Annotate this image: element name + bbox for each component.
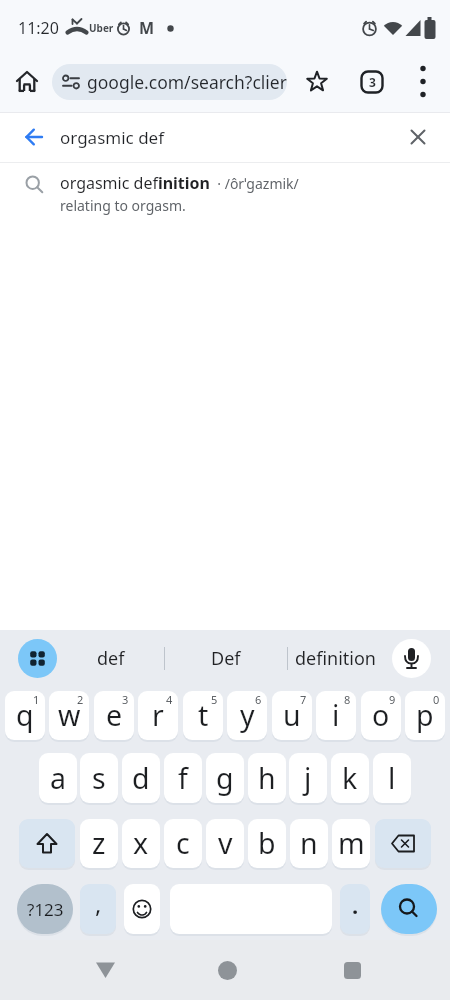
button[interactable]: u xyxy=(272,691,312,740)
button[interactable]: a xyxy=(39,753,77,803)
staticText: , xyxy=(95,887,102,920)
button[interactable] xyxy=(215,958,240,983)
staticText: orgasmic definition · /ôrˈgazmik/ xyxy=(60,172,299,194)
staticText: n xyxy=(300,824,318,863)
button[interactable]: q xyxy=(5,691,45,740)
staticText: 2 xyxy=(77,692,84,707)
staticText: s xyxy=(92,759,106,798)
button[interactable]: p xyxy=(405,691,445,740)
staticText: r xyxy=(152,696,164,735)
button[interactable]: 3 xyxy=(360,70,384,94)
button[interactable] xyxy=(19,819,75,868)
staticText: z xyxy=(92,824,106,863)
staticText: j xyxy=(304,759,312,798)
button[interactable]: t xyxy=(183,691,223,740)
staticText: g xyxy=(216,759,234,798)
staticText: u xyxy=(283,696,301,735)
staticText: f xyxy=(178,759,188,798)
staticText: h xyxy=(258,759,276,798)
button[interactable]: def xyxy=(62,636,160,681)
staticText: M xyxy=(139,17,155,39)
staticText: . xyxy=(352,890,359,920)
staticText: o xyxy=(372,696,390,735)
button[interactable]: c xyxy=(164,819,202,868)
button[interactable]: y xyxy=(227,691,267,740)
staticText: definition xyxy=(295,646,376,671)
staticText: k xyxy=(342,759,358,798)
button[interactable] xyxy=(375,819,431,868)
staticText: orgasmic def xyxy=(60,126,165,149)
staticText: p xyxy=(416,696,434,735)
staticText: m xyxy=(338,824,365,863)
staticText: 7 xyxy=(300,692,307,707)
staticText: 8 xyxy=(344,692,351,707)
button[interactable]: orgasmic definition · /ôrˈgazmik/ xyxy=(0,165,450,220)
button[interactable] xyxy=(124,884,160,934)
staticText: 0 xyxy=(433,692,440,707)
staticText: q xyxy=(16,696,34,735)
staticText: relating to orgasm. xyxy=(60,196,186,215)
staticText: v xyxy=(218,824,233,863)
button[interactable]: l xyxy=(373,753,411,803)
staticText: e xyxy=(106,696,123,735)
button[interactable]: b xyxy=(248,819,286,868)
staticText: 6 xyxy=(255,692,262,707)
staticText: 5 xyxy=(211,692,218,707)
button[interactable] xyxy=(13,68,41,96)
button[interactable] xyxy=(340,958,365,983)
button[interactable]: google.com/search?clier xyxy=(52,64,287,100)
button[interactable]: v xyxy=(206,819,244,868)
button[interactable] xyxy=(381,884,437,934)
button[interactable] xyxy=(392,639,431,678)
button[interactable]: r xyxy=(138,691,178,740)
button[interactable]: w xyxy=(49,691,89,740)
staticText: w xyxy=(58,696,81,735)
button[interactable]: , xyxy=(80,884,116,934)
staticText: 1 xyxy=(33,692,40,707)
staticText: 4 xyxy=(166,692,173,707)
button[interactable] xyxy=(417,62,429,102)
button[interactable]: d xyxy=(122,753,160,803)
button[interactable] xyxy=(18,639,57,678)
button[interactable] xyxy=(306,71,328,93)
staticText: 9 xyxy=(389,692,396,707)
staticText: google.com/search?clier xyxy=(87,70,287,94)
staticText: Uber xyxy=(89,21,114,35)
button[interactable]: n xyxy=(290,819,328,868)
staticText: Def xyxy=(211,646,241,671)
button[interactable]: z xyxy=(80,819,118,868)
staticText: 3 xyxy=(369,74,376,90)
button[interactable]: o xyxy=(361,691,401,740)
staticText: d xyxy=(132,759,150,798)
button[interactable]: e xyxy=(94,691,134,740)
button[interactable]: i xyxy=(316,691,356,740)
button[interactable]: definition xyxy=(285,636,385,681)
staticText: i xyxy=(332,696,340,735)
staticText: l xyxy=(388,759,396,798)
staticText: t xyxy=(198,696,209,735)
staticText: c xyxy=(176,824,190,863)
button[interactable]: Def xyxy=(168,636,284,681)
button[interactable]: ?123 xyxy=(17,884,73,934)
staticText: y xyxy=(240,696,255,735)
staticText: 3 xyxy=(122,692,129,707)
button[interactable]: . xyxy=(340,884,370,934)
button[interactable]: f xyxy=(164,753,202,803)
staticText: 11:20 xyxy=(18,17,59,39)
staticText: ?123 xyxy=(27,898,64,921)
staticText: a xyxy=(50,759,66,798)
button[interactable]: s xyxy=(80,753,118,803)
button[interactable] xyxy=(24,127,44,147)
button[interactable] xyxy=(93,958,118,983)
button[interactable]: g xyxy=(206,753,244,803)
button[interactable]: j xyxy=(289,753,327,803)
staticText: def xyxy=(97,646,125,671)
staticText: b xyxy=(258,824,276,863)
button[interactable]: h xyxy=(248,753,286,803)
button[interactable]: x xyxy=(122,819,160,868)
button[interactable]: k xyxy=(331,753,369,803)
staticText: x xyxy=(133,824,149,863)
button[interactable] xyxy=(410,129,426,145)
button[interactable]: m xyxy=(332,819,370,868)
